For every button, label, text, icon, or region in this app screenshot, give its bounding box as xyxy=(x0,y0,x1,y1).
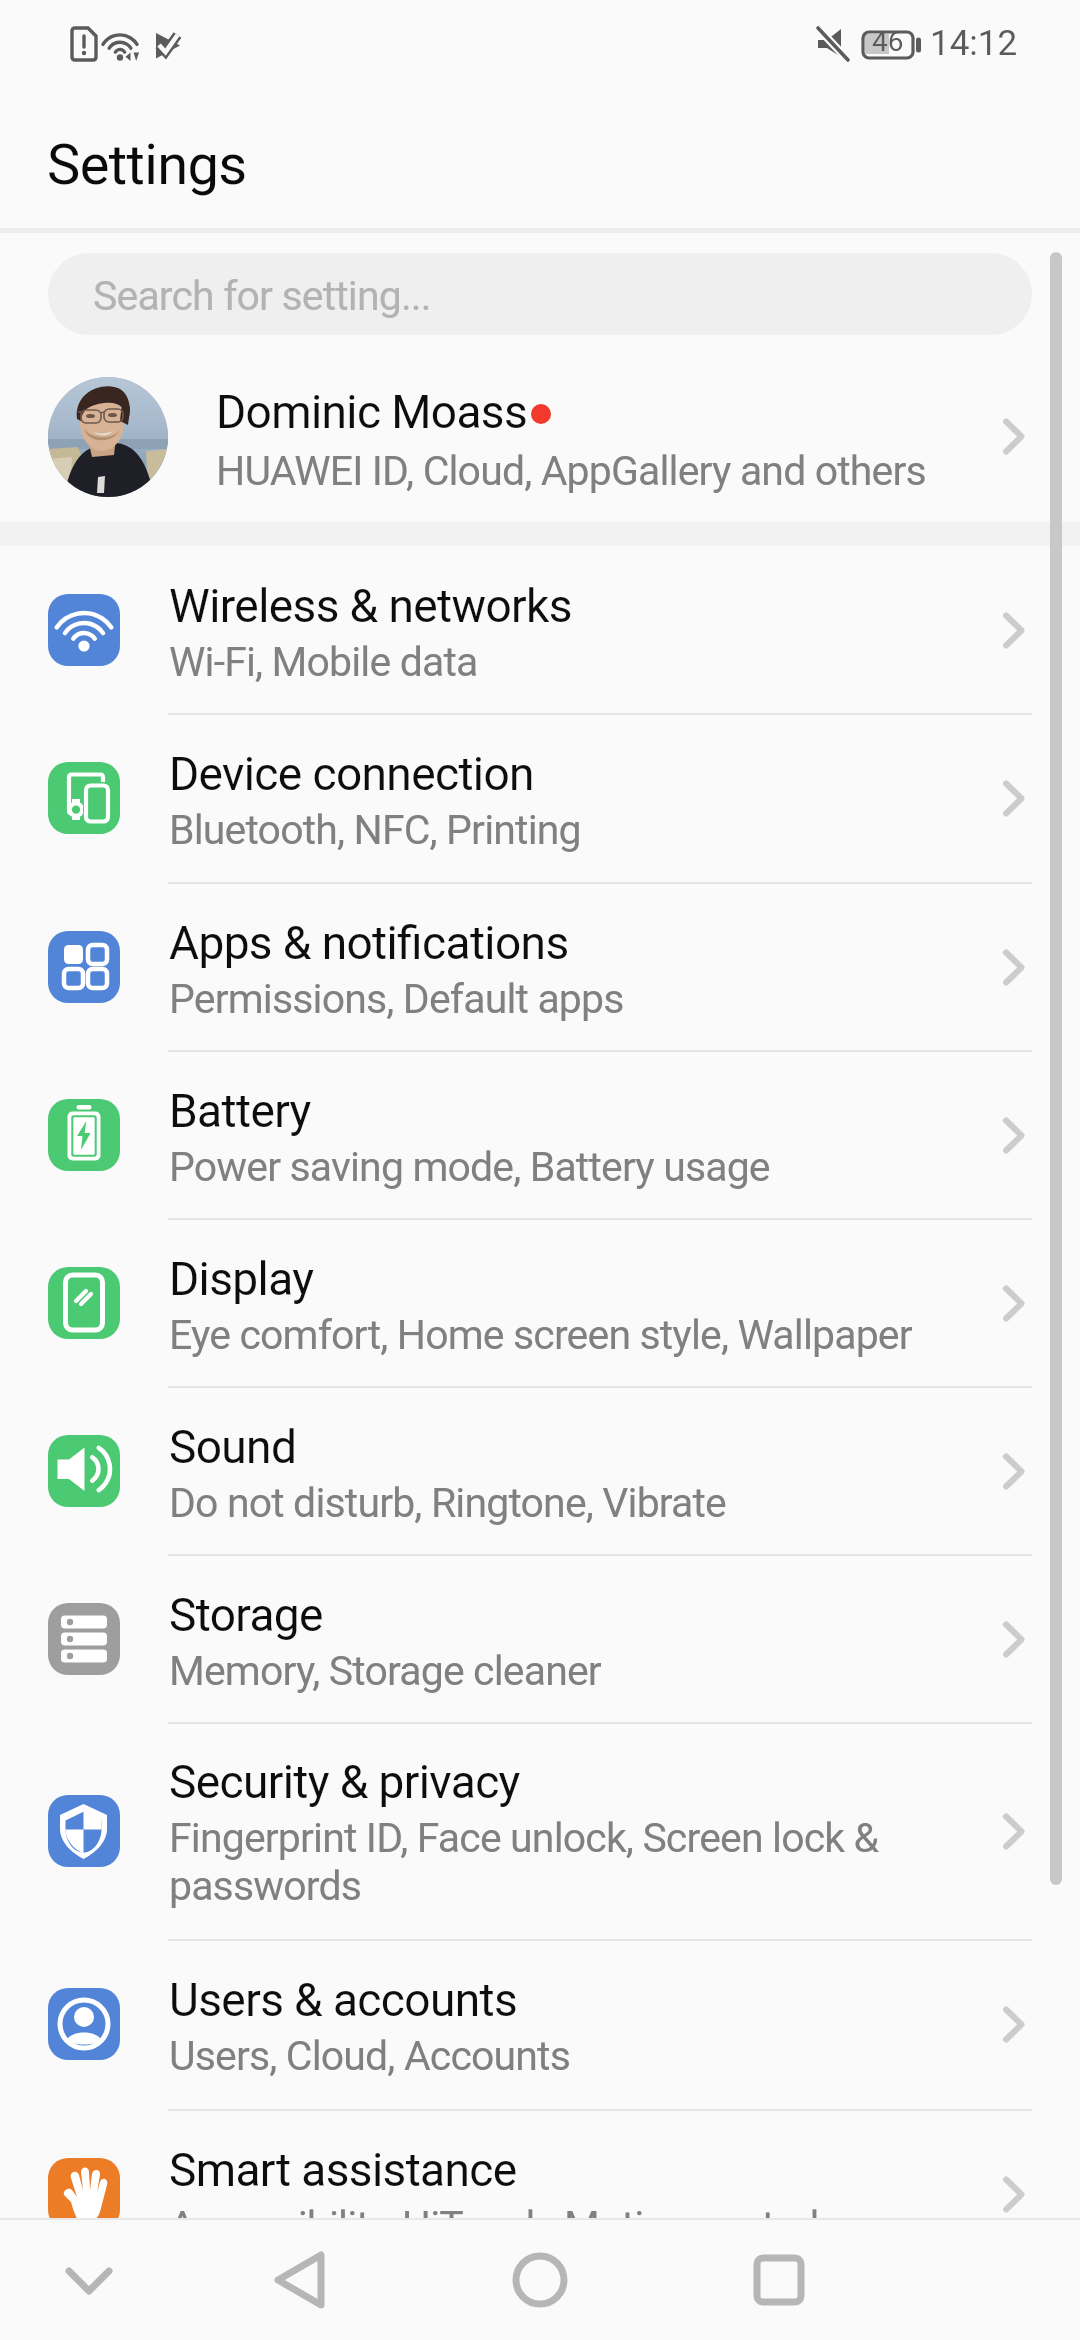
staticText: Fingerprint ID, Face unlock, Screen lock… xyxy=(169,1813,879,1862)
button[interactable]: Battery xyxy=(0,1051,1080,1219)
staticText: Smart assistance xyxy=(169,2142,517,2197)
staticText: Search for setting... xyxy=(93,271,431,320)
staticText: HUAWEI ID, Cloud, AppGallery and others xyxy=(216,446,926,495)
staticText: Sound xyxy=(169,1419,297,1474)
button[interactable]: Display xyxy=(0,1219,1080,1387)
staticText: Wi-Fi, Mobile data xyxy=(169,637,478,686)
staticText: Bluetooth, NFC, Printing xyxy=(169,805,581,854)
staticText: passwords xyxy=(169,1861,361,1910)
button[interactable]: Wireless & networks xyxy=(0,546,1080,714)
staticText: Power saving mode, Battery usage xyxy=(169,1142,770,1191)
button[interactable]: Apps & notifications xyxy=(0,883,1080,1051)
staticText: 14:12 xyxy=(930,22,1018,64)
button[interactable]: Back xyxy=(230,2220,370,2340)
button[interactable]: Hide navigation bar xyxy=(19,2220,159,2340)
staticText: Wireless & networks xyxy=(169,578,572,633)
staticText: Users & accounts xyxy=(169,1972,518,2027)
staticText: 46 xyxy=(872,24,904,58)
button[interactable]: Home xyxy=(470,2220,610,2340)
button[interactable]: Device connection xyxy=(0,714,1080,882)
staticText: Accessibility, HiTouch, Motion control xyxy=(169,2201,819,2250)
staticText: Settings xyxy=(47,131,247,198)
staticText: Battery xyxy=(169,1083,311,1138)
staticText: Apps & notifications xyxy=(169,915,569,970)
button[interactable]: Sound xyxy=(0,1387,1080,1555)
button[interactable]: Smart assistance xyxy=(0,2110,1080,2278)
staticText: Display xyxy=(169,1251,314,1306)
button[interactable]: Dominic Moass xyxy=(0,355,1080,522)
staticText: Do not disturb, Ringtone, Vibrate xyxy=(169,1478,727,1527)
button[interactable]: Storage xyxy=(0,1555,1080,1723)
button[interactable]: Security & privacy xyxy=(0,1723,1080,1940)
staticText: Permissions, Default apps xyxy=(169,974,624,1023)
button[interactable]: Search for setting... xyxy=(48,253,1032,335)
staticText: Dominic Moass xyxy=(216,384,528,439)
button[interactable]: Recent apps xyxy=(709,2220,849,2340)
button[interactable]: Users & accounts xyxy=(0,1940,1080,2108)
staticText: Eye comfort, Home screen style, Wallpape… xyxy=(169,1310,912,1359)
staticText: Security & privacy xyxy=(169,1754,520,1809)
staticText: Memory, Storage cleaner xyxy=(169,1646,601,1695)
staticText: Users, Cloud, Accounts xyxy=(169,2031,570,2080)
staticText: Device connection xyxy=(169,746,534,801)
staticText: Storage xyxy=(169,1587,323,1642)
